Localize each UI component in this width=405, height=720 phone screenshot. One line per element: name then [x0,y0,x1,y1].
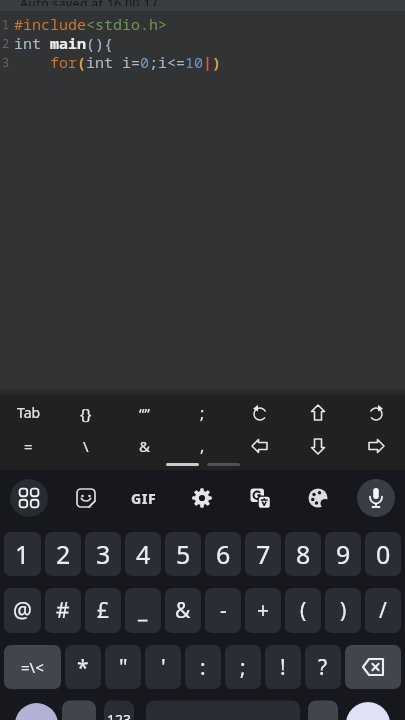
button[interactable] [81,695,162,720]
staticText: ' [161,653,166,682]
button[interactable]: - [205,588,241,633]
staticText: / [379,596,387,625]
staticText: @ [13,596,32,625]
staticText: Tab [17,403,41,422]
button[interactable] [324,695,405,720]
button[interactable]: 8 [285,532,321,576]
button[interactable]: 2 [45,532,81,576]
button[interactable]: ? [305,645,341,689]
staticText: : [200,653,206,682]
staticText: 3 [2,54,12,70]
button[interactable]: ; [225,645,261,689]
staticText: & [175,596,191,625]
button[interactable]: ( [285,588,321,633]
button[interactable]: =\< [4,645,61,689]
button[interactable] [162,695,324,720]
button[interactable]: ! [265,645,301,689]
button[interactable] [231,429,289,462]
button[interactable] [173,470,231,526]
staticText: 7 [256,537,271,571]
staticText: , [200,435,205,457]
button[interactable]: ' [145,645,181,689]
staticText: 8 [296,537,311,571]
button[interactable]: GIF [115,470,173,526]
staticText: - [220,596,227,625]
button[interactable]: Tab [0,396,57,429]
button[interactable] [289,429,347,462]
button[interactable] [345,645,401,689]
staticText: 6 [216,537,231,571]
staticText: 2 [56,537,71,571]
button[interactable]: & [115,429,173,462]
staticText: =\< [21,657,44,677]
staticText: + [257,596,270,625]
button[interactable]: 4 [125,532,161,576]
staticText: ( [300,596,307,625]
button[interactable]: ) [325,588,361,633]
button[interactable] [231,470,289,526]
staticText: # [56,596,70,625]
staticText: 3 [96,537,111,571]
button[interactable] [57,470,115,526]
staticText: ; [200,402,205,424]
staticText: #include<stdio.h> [14,14,168,33]
button[interactable]: 3 [85,532,121,576]
staticText: ) [340,596,347,625]
staticText: GIF [131,489,157,508]
button[interactable] [289,470,347,526]
staticText: 2 [2,35,12,51]
button[interactable]: , [173,429,231,462]
button[interactable]: 1 [4,532,41,576]
staticText: 123 [107,710,132,720]
staticText: 0 [376,537,391,571]
staticText: & [139,436,150,456]
button[interactable]: / [365,588,401,633]
staticText: = [24,436,33,456]
button[interactable] [0,695,81,720]
staticText: 9 [336,537,351,571]
button[interactable]: & [165,588,201,633]
staticText: ; [240,653,246,682]
staticText: £ [97,596,110,625]
button[interactable]: “” [115,396,173,429]
button[interactable] [231,396,289,429]
staticText: for(int i=0;i<=10|) [14,52,222,71]
button[interactable]: 5 [165,532,201,576]
staticText: 5 [176,537,191,571]
staticText: ! [280,653,286,682]
button[interactable]: 0 [365,532,401,576]
staticText: " [119,653,128,682]
button[interactable] [289,396,347,429]
button[interactable]: @ [4,588,41,633]
staticText: int main(){ [14,33,114,52]
button[interactable]: _ [125,588,161,633]
staticText: {} [80,403,92,423]
staticText: 1 [2,16,12,32]
staticText: Auto saved at 16.00.17 [20,0,158,6]
staticText: “” [139,403,150,423]
staticText: \ [83,436,89,456]
staticText: * [77,653,89,682]
staticText: _ [138,596,148,625]
button[interactable]: 9 [325,532,361,576]
button[interactable]: \ [57,429,115,462]
button[interactable] [347,470,405,526]
button[interactable]: = [0,429,57,462]
button[interactable] [0,470,57,526]
button[interactable] [347,396,405,429]
button[interactable]: 6 [205,532,241,576]
button[interactable]: £ [85,588,121,633]
button[interactable]: : [185,645,221,689]
button[interactable]: " [105,645,141,689]
staticText: ? [318,653,328,682]
button[interactable]: 7 [245,532,281,576]
staticText: 1 [15,537,30,571]
staticText: 4 [136,537,151,571]
button[interactable]: ; [173,396,231,429]
button[interactable]: + [245,588,281,633]
button[interactable]: * [65,645,101,689]
button[interactable] [347,429,405,462]
button[interactable]: {} [57,396,115,429]
button[interactable]: # [45,588,81,633]
